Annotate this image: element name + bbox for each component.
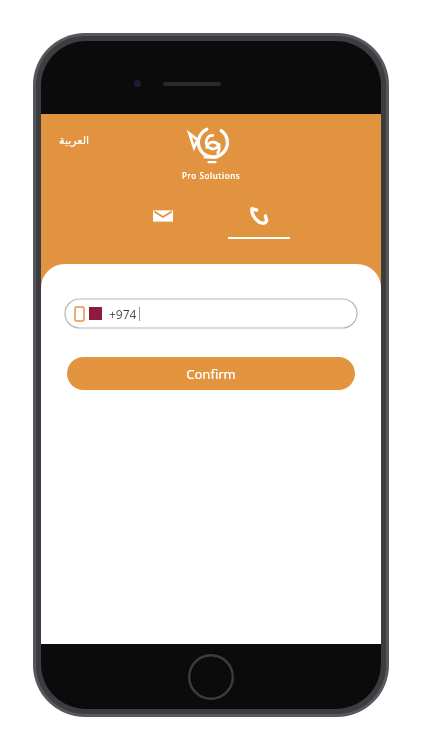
button[interactable]: Confirm (67, 357, 355, 390)
button[interactable]: العربية (57, 132, 92, 149)
staticText: العربية (59, 134, 90, 147)
staticText: +974 (109, 306, 137, 322)
staticText: Confirm (186, 365, 236, 383)
button[interactable]: Phone login (211, 202, 307, 243)
staticText: Pro Solutions (182, 170, 241, 181)
button[interactable]: Email login (115, 202, 211, 243)
button[interactable]: +974 (65, 299, 357, 328)
